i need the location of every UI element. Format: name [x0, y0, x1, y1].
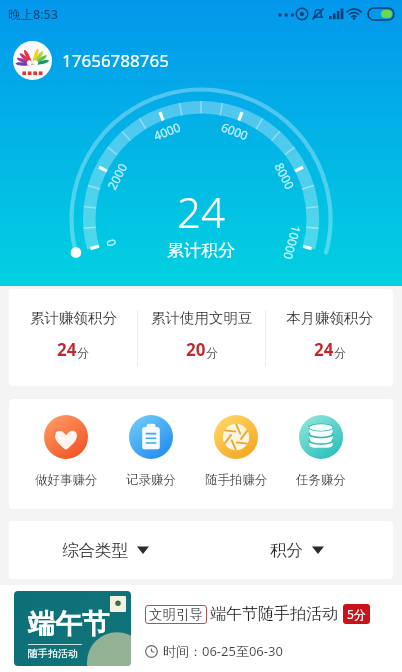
staticText: 20: [186, 338, 206, 361]
staticText: 累计赚领积分: [30, 309, 117, 327]
button[interactable]: 累计赚领积分: [9, 289, 137, 386]
staticText: 做好事赚分: [35, 472, 98, 488]
staticText: 端午节: [28, 607, 109, 641]
button[interactable]: 随手拍赚分: [194, 415, 278, 488]
staticText: 10000: [280, 224, 305, 262]
staticText: 随手拍赚分: [205, 472, 268, 488]
staticText: 24: [177, 183, 225, 240]
button[interactable]: 端午节: [0, 585, 402, 672]
staticText: 时间：06-25至06-30: [163, 642, 283, 660]
staticText: 5分: [347, 606, 366, 622]
staticText: 积分: [270, 540, 303, 561]
button[interactable]: 本月赚领积分: [266, 289, 393, 386]
staticText: 6000: [219, 118, 251, 143]
staticText: 17656788765: [62, 49, 169, 72]
staticText: 4000: [151, 118, 183, 143]
staticText: 随手拍活动: [28, 647, 78, 660]
button[interactable]: 累计使用文明豆: [138, 289, 265, 386]
staticText: 记录赚分: [126, 472, 176, 488]
staticText: 分: [334, 345, 346, 360]
staticText: 8000: [271, 160, 298, 192]
staticText: 2000: [103, 160, 130, 192]
staticText: 0: [102, 237, 119, 248]
staticText: 综合类型: [62, 540, 128, 561]
staticText: 分: [206, 345, 218, 360]
staticText: 24: [57, 338, 77, 361]
staticText: 任务赚分: [296, 472, 346, 488]
staticText: 累计积分: [167, 240, 235, 261]
button[interactable]: 积分: [201, 521, 393, 579]
button[interactable]: 任务赚分: [279, 415, 363, 488]
staticText: 24: [314, 338, 334, 361]
staticText: 文明引导: [149, 606, 203, 623]
button[interactable]: 记录赚分: [109, 415, 193, 488]
button[interactable]: 做好事赚分: [24, 415, 108, 488]
staticText: 晚上8:53: [8, 6, 58, 23]
staticText: 分: [77, 345, 89, 360]
staticText: 端午节随手拍活动: [210, 604, 338, 624]
staticText: 本月赚领积分: [286, 309, 373, 327]
button[interactable]: 综合类型: [9, 521, 201, 579]
staticText: 累计使用文明豆: [151, 309, 253, 327]
